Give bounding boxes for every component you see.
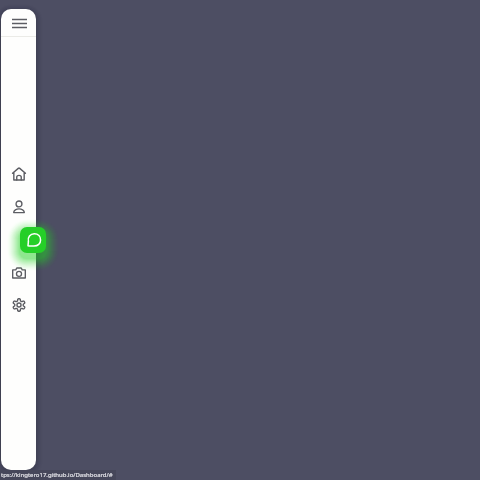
button[interactable]: Profile <box>5 197 32 217</box>
staticText: tps://kingtero17.github.io/Dashboard/# <box>1 471 113 479</box>
button[interactable]: Chat <box>20 227 46 253</box>
button[interactable]: Menu <box>1 10 36 38</box>
button[interactable]: Home <box>5 164 32 184</box>
button[interactable]: Settings <box>5 295 32 315</box>
button[interactable]: Camera <box>5 263 32 283</box>
